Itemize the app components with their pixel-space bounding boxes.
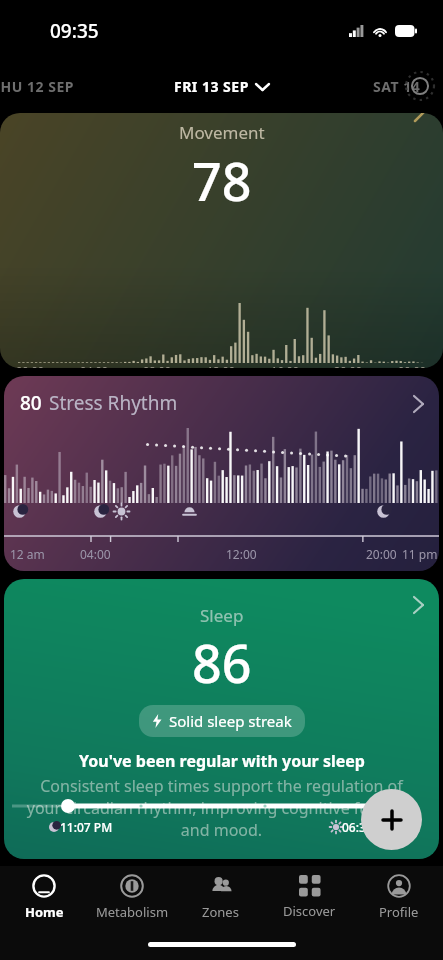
staticText: FRI 13 SEP — [174, 77, 249, 96]
staticText: 12:00 — [226, 546, 257, 562]
staticText: You've been regular with your sleep — [79, 750, 365, 772]
button[interactable]: Discover — [265, 866, 354, 928]
staticText: 08:00 — [143, 363, 172, 368]
button[interactable]: FRI 13 SEP — [174, 77, 269, 96]
button[interactable]: Profile — [354, 866, 443, 928]
button[interactable]: Add — [361, 789, 422, 850]
button[interactable]: Movement — [0, 113, 443, 368]
staticText: 11 pm — [402, 546, 438, 562]
staticText: 80 — [20, 390, 42, 416]
staticText: Movement — [179, 121, 265, 144]
staticText: Home — [25, 903, 64, 921]
staticText: 04:00 — [80, 363, 109, 368]
staticText: 12 am — [10, 546, 45, 562]
staticText: 20:00 — [334, 363, 363, 368]
staticText: 00:00 — [16, 363, 45, 368]
staticText: 04:00 — [80, 546, 111, 562]
staticText: 86 — [192, 627, 252, 698]
button[interactable]: Home — [0, 866, 88, 928]
button[interactable]: 80 — [4, 376, 439, 571]
staticText: Discover — [283, 902, 336, 920]
button[interactable]: Sleep — [4, 579, 439, 859]
staticText: 20:00 — [366, 546, 397, 562]
staticText: Metabolism — [96, 903, 169, 921]
staticText: 11:07 PM — [60, 819, 113, 835]
button[interactable]: Metabolism — [88, 866, 176, 928]
button[interactable]: THU 12 SEP — [0, 77, 74, 96]
staticText: Stress Rhythm — [49, 390, 178, 416]
staticText: Zones — [202, 903, 239, 921]
staticText: 06:33 AM — [342, 819, 395, 835]
staticText: Solid sleep streak — [169, 711, 292, 731]
staticText: 12:00 — [207, 363, 236, 368]
button[interactable]: Solid sleep streak — [152, 711, 292, 731]
staticText: 78 — [192, 145, 252, 216]
staticText: 00:00 — [398, 363, 427, 368]
staticText: Profile — [379, 903, 419, 921]
button[interactable]: Daily progress — [403, 69, 437, 103]
button[interactable]: SAT 14 — [373, 77, 421, 96]
button[interactable]: Zones — [176, 866, 265, 928]
staticText: Sleep — [200, 604, 244, 627]
staticText: Consistent sleep times support the regul… — [24, 775, 419, 841]
staticText: 09:35 — [50, 18, 99, 44]
staticText: 16:00 — [271, 363, 300, 368]
